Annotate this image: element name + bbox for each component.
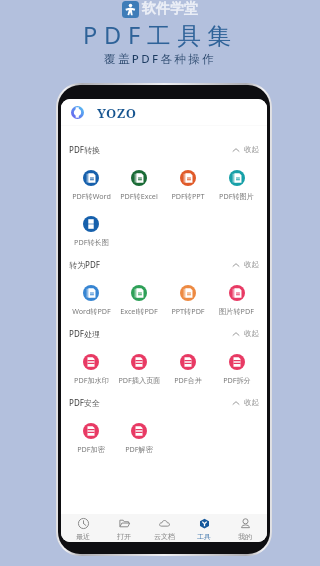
staticText: Word转PDF — [72, 306, 111, 316]
staticText: 云文档 — [154, 532, 175, 541]
button[interactable]: PDF转Excel — [115, 161, 163, 207]
button[interactable]: PDF加密 — [67, 414, 115, 460]
button[interactable]: 转为PDF — [61, 253, 267, 276]
staticText: PDF转Word — [72, 191, 111, 201]
staticText: 覆盖PDF各种操作 — [104, 51, 217, 67]
staticText: PDF解密 — [125, 444, 153, 454]
button[interactable]: PDF处理 — [61, 322, 267, 345]
button[interactable]: Word转PDF — [67, 276, 115, 322]
button[interactable]: PPT转PDF — [163, 276, 212, 322]
button[interactable]: Excel转PDF — [115, 276, 163, 322]
staticText: 收起 — [244, 260, 259, 269]
button[interactable]: PDF加水印 — [67, 345, 115, 391]
staticText: PDF安全 — [69, 397, 100, 408]
staticText: PDF加水印 — [74, 375, 109, 385]
staticText: PDF转长图 — [74, 237, 109, 247]
button[interactable]: PDF转PPT — [163, 161, 212, 207]
button[interactable]: 工具 — [186, 514, 222, 541]
staticText: 收起 — [244, 329, 259, 338]
button[interactable]: 图片转PDF — [212, 276, 261, 322]
staticText: PDF加密 — [77, 444, 105, 454]
staticText: PDF插入页面 — [118, 375, 161, 385]
staticText: PDF转PPT — [171, 191, 205, 201]
button[interactable]: PDF安全 — [61, 391, 267, 414]
staticText: 软件学堂 — [142, 0, 198, 18]
staticText: 收起 — [244, 398, 259, 407]
staticText: PDF拆分 — [223, 375, 251, 385]
button[interactable]: PDF转Word — [67, 161, 115, 207]
button[interactable]: PDF转图片 — [212, 161, 261, 207]
button[interactable]: PDF转换 — [61, 138, 267, 161]
staticText: 工具 — [197, 532, 211, 541]
staticText: 图片转PDF — [219, 306, 254, 316]
staticText: 我的 — [238, 532, 252, 541]
button[interactable]: PDF转长图 — [67, 207, 115, 253]
staticText: 打开 — [117, 532, 131, 541]
staticText: 收起 — [244, 145, 259, 154]
staticText: YOZO — [97, 104, 137, 122]
staticText: PDF合并 — [174, 375, 202, 385]
staticText: PDF转换 — [69, 144, 100, 155]
button[interactable]: PDF合并 — [163, 345, 212, 391]
staticText: PPT转PDF — [171, 306, 205, 316]
staticText: Excel转PDF — [120, 306, 158, 316]
staticText: PDF工具集 — [83, 19, 238, 51]
staticText: PDF转Excel — [120, 191, 158, 201]
staticText: PDF处理 — [69, 328, 100, 339]
button[interactable]: 我的 — [227, 514, 263, 541]
button[interactable]: 打开 — [106, 514, 142, 541]
button[interactable]: PDF插入页面 — [115, 345, 163, 391]
staticText: PDF转图片 — [219, 191, 254, 201]
button[interactable]: PDF拆分 — [212, 345, 261, 391]
button[interactable]: 最近 — [65, 514, 101, 541]
button[interactable]: 云文档 — [146, 514, 182, 541]
staticText: 转为PDF — [69, 259, 100, 270]
staticText: 最近 — [76, 532, 90, 541]
button[interactable]: PDF解密 — [115, 414, 163, 460]
